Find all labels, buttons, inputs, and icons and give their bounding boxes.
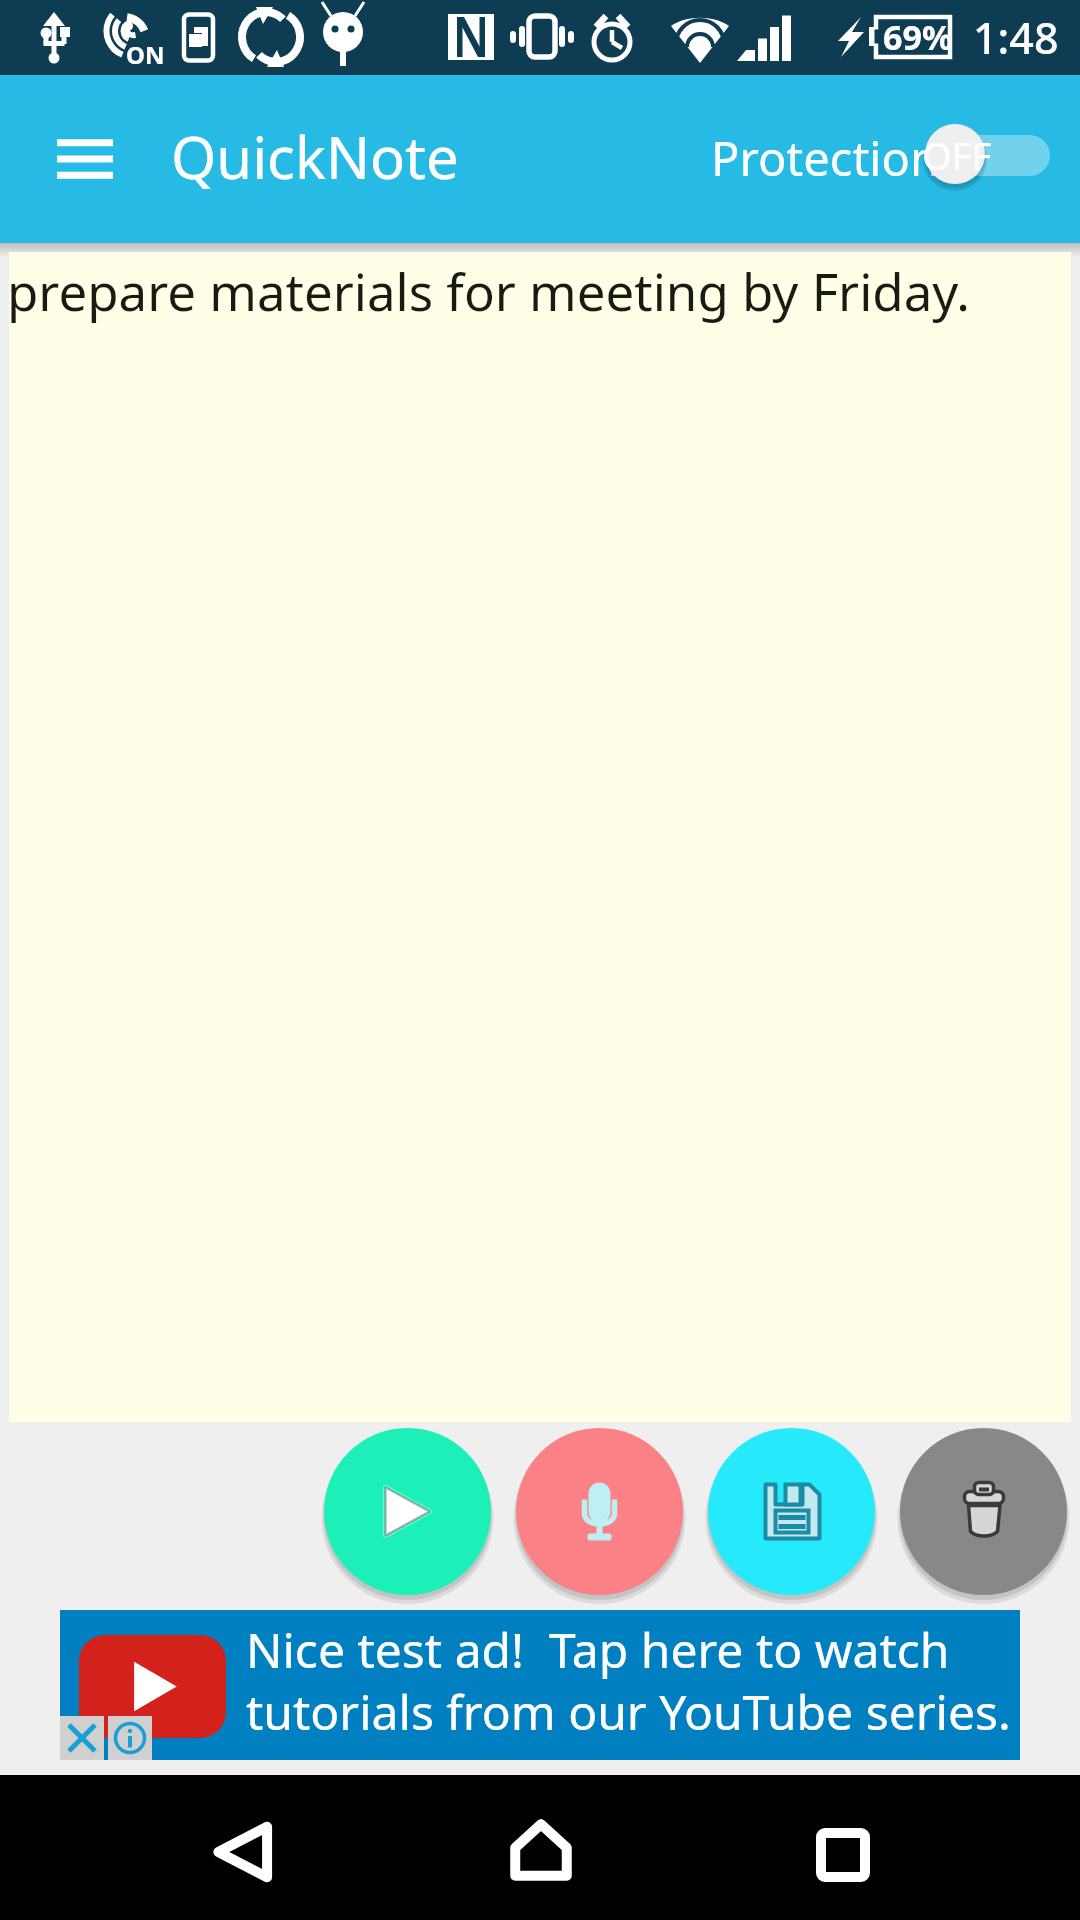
button[interactable]: Protection toggle <box>918 120 1058 200</box>
button[interactable]: Recents <box>793 1805 893 1905</box>
button[interactable]: Save <box>708 1428 875 1595</box>
button[interactable]: Close ad <box>60 1716 104 1760</box>
staticText: ON <box>126 38 165 71</box>
staticText: OFF <box>922 129 992 181</box>
staticText: Nice test ad! Tap here to watch <box>246 1617 950 1682</box>
staticText: Protection <box>711 126 939 190</box>
staticText: prepare materials for meeting by Friday. <box>7 256 970 325</box>
button[interactable]: Back <box>193 1802 293 1902</box>
staticText: QuickNote <box>171 117 459 196</box>
button[interactable]: Ad info <box>108 1716 152 1760</box>
staticText: tutorials from our YouTube series. <box>246 1679 1011 1744</box>
button[interactable]: Nice test ad! Tap here to watch <box>60 1610 1020 1760</box>
button[interactable]: Play <box>324 1428 491 1595</box>
staticText: 69% <box>883 14 953 60</box>
button[interactable]: Home <box>491 1800 591 1900</box>
staticText: 1:48 <box>973 8 1059 67</box>
button[interactable]: Delete <box>900 1428 1067 1595</box>
button[interactable]: Menu <box>40 114 130 204</box>
button[interactable]: prepare materials for meeting by Friday. <box>9 252 1071 1422</box>
button[interactable]: Record <box>516 1428 683 1595</box>
